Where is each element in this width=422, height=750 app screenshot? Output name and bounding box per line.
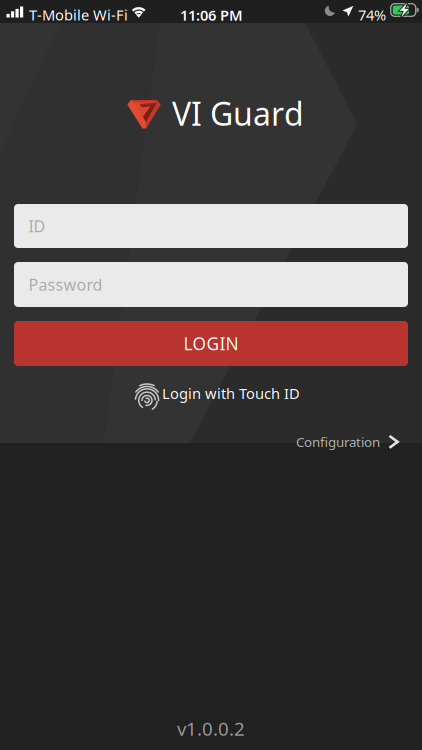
button[interactable]: Login with Touch ID [132, 381, 298, 411]
staticText: Configuration [296, 433, 380, 451]
staticText: LOGIN [183, 332, 238, 355]
button[interactable]: Configuration [296, 433, 399, 451]
staticText: 11:06 PM [180, 5, 243, 25]
staticText: VI Guard [172, 92, 304, 134]
button[interactable]: LOGIN [14, 321, 408, 366]
staticText: ID [28, 215, 45, 237]
staticText: v1.0.0.2 [177, 716, 245, 741]
staticText: 74% [358, 5, 386, 24]
staticText: T-Mobile Wi-Fi [29, 5, 128, 24]
staticText: Password [28, 274, 102, 295]
staticText: Login with Touch ID [162, 384, 300, 403]
